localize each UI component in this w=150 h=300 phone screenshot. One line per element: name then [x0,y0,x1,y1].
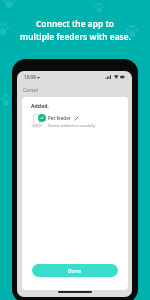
staticText: Device added successfully [48,123,96,128]
staticText: Pet feeder [48,115,71,121]
staticText: multiple feeders with ease. [20,31,131,42]
button[interactable]: Pet feeder [22,113,128,128]
staticText: 10:08 [24,74,36,80]
staticText: Cancel [23,87,38,94]
button[interactable]: Cancel [17,84,43,97]
staticText: Added. [31,102,49,109]
staticText: Done [68,267,82,274]
button[interactable]: Done [32,264,118,277]
button[interactable]: Edit name [74,116,79,121]
staticText: Connect the app to [36,18,114,29]
